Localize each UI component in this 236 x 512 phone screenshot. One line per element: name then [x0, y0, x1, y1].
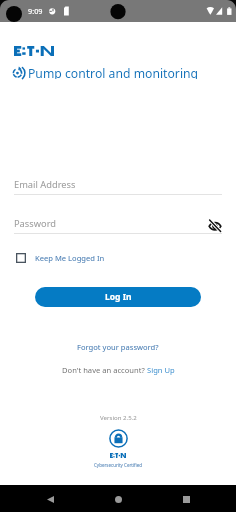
staticText: Sign Up — [147, 365, 175, 375]
staticText: Don't have an account? — [62, 365, 147, 375]
button[interactable]: Forgot your password? — [77, 342, 159, 352]
button[interactable]: Keep Me Logged In — [16, 251, 105, 265]
staticText: 9:09 — [28, 6, 43, 16]
staticText: Password — [14, 217, 57, 229]
button[interactable]: Log In — [35, 287, 201, 307]
button[interactable]: Sign Up — [147, 365, 175, 375]
staticText: Keep Me Logged In — [35, 253, 105, 263]
staticText: Email Address — [14, 178, 76, 190]
staticText: Pump control and monitoring — [28, 65, 199, 79]
button[interactable]: Show password — [208, 220, 222, 232]
staticText: Version 2.5.2 — [100, 413, 137, 421]
button[interactable]: Home — [107, 488, 129, 510]
staticText: Log In — [105, 291, 132, 303]
staticText: Forgot your password? — [77, 342, 159, 352]
button[interactable]: Recents — [175, 488, 197, 510]
button[interactable]: Back — [39, 488, 61, 510]
staticText: Cybersecurity Certified — [94, 462, 143, 468]
